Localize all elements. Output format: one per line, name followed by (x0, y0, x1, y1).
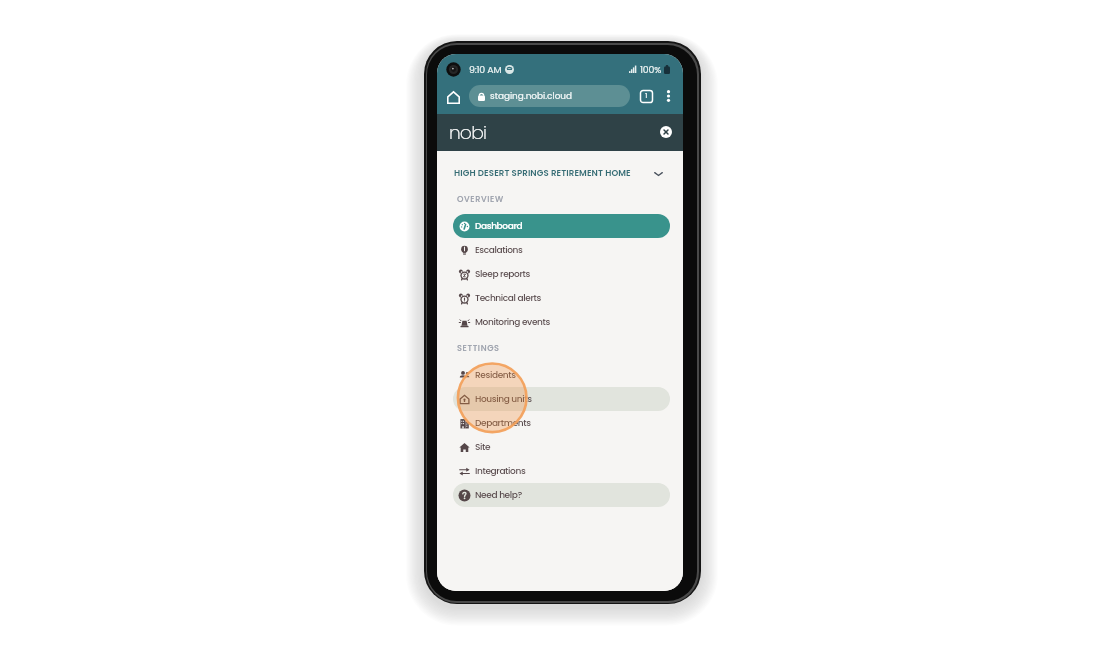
button[interactable]: Need help? (453, 483, 670, 507)
staticText: Residents (475, 369, 516, 382)
staticText: Monitoring events (475, 316, 550, 329)
button[interactable]: Departments (453, 411, 670, 435)
button[interactable]: Integrations (453, 459, 670, 483)
button[interactable]: Tabs (638, 88, 654, 104)
staticText: Escalations (475, 244, 523, 257)
staticText: SETTINGS (457, 342, 500, 353)
button[interactable]: Technical alerts (453, 286, 670, 310)
button[interactable]: Close menu (658, 124, 674, 140)
button[interactable]: Sleep reports (453, 262, 670, 286)
staticText: Sleep reports (475, 268, 530, 281)
staticText: 100% (640, 63, 662, 76)
button[interactable]: Housing units (453, 387, 670, 411)
staticText: Site (475, 441, 491, 454)
staticText: Need help? (475, 489, 522, 502)
staticText: Housing units (475, 393, 532, 406)
button[interactable]: staging.nobi.cloud (469, 85, 630, 107)
button[interactable]: Home (444, 88, 462, 106)
staticText: OVERVIEW (457, 193, 504, 204)
staticText: Departments (475, 417, 531, 430)
button[interactable]: More options (660, 88, 676, 104)
staticText: HIGH DESERT SPRINGS RETIREMENT HOME (454, 167, 631, 179)
staticText: Technical alerts (475, 292, 541, 305)
button[interactable]: Escalations (453, 238, 670, 262)
button[interactable]: Site (453, 435, 670, 459)
staticText: 1 (645, 90, 648, 100)
staticText: Integrations (475, 465, 526, 478)
button[interactable]: Monitoring events (453, 310, 670, 334)
staticText: staging.nobi.cloud (490, 90, 573, 102)
staticText: Dashboard (475, 220, 523, 233)
staticText: 9:10 AM (469, 63, 502, 76)
staticText: nobi (449, 119, 487, 145)
button[interactable]: HIGH DESERT SPRINGS RETIREMENT HOME (437, 165, 683, 181)
button[interactable]: Residents (453, 363, 670, 387)
button[interactable]: Dashboard (453, 214, 670, 238)
